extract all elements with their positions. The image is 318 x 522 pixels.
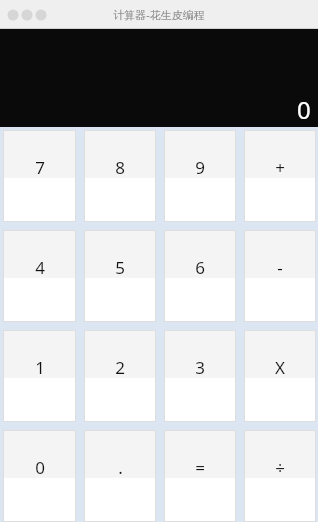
button[interactable]: + <box>244 130 316 222</box>
button[interactable]: 1 <box>3 330 76 422</box>
staticText: 4 <box>35 256 45 279</box>
button[interactable]: X <box>244 330 316 422</box>
button[interactable]: 2 <box>84 330 156 422</box>
button[interactable]: ÷ <box>244 430 316 522</box>
button[interactable]: - <box>244 230 316 322</box>
staticText: 1 <box>35 356 45 379</box>
button[interactable]: 3 <box>164 330 236 422</box>
staticText: ÷ <box>275 456 285 479</box>
staticText: 7 <box>35 156 45 179</box>
button[interactable]: 8 <box>84 130 156 222</box>
button[interactable]: 9 <box>164 130 236 222</box>
staticText: = <box>195 456 205 479</box>
staticText: 6 <box>195 256 205 279</box>
staticText: + <box>275 156 285 179</box>
button[interactable]: 5 <box>84 230 156 322</box>
staticText: . <box>118 456 123 479</box>
staticText: 2 <box>115 356 125 379</box>
staticText: 计算器-花生皮编程 <box>113 7 205 22</box>
button[interactable]: 7 <box>3 130 76 222</box>
button[interactable]: 6 <box>164 230 236 322</box>
staticText: 3 <box>195 356 205 379</box>
staticText: 8 <box>115 156 125 179</box>
staticText: X <box>275 356 285 379</box>
button[interactable]: 0 <box>3 430 76 522</box>
button[interactable]: = <box>164 430 236 522</box>
staticText: 0 <box>297 93 311 126</box>
staticText: - <box>277 256 283 279</box>
button[interactable]: . <box>84 430 156 522</box>
staticText: 9 <box>195 156 205 179</box>
staticText: 5 <box>115 256 125 279</box>
button[interactable]: 4 <box>3 230 76 322</box>
staticText: 0 <box>35 456 45 479</box>
